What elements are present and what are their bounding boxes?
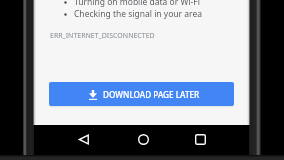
- staticText: Checking the signal in your area: [74, 8, 202, 20]
- other: Download: [89, 90, 97, 100]
- staticText: DOWNLOAD PAGE LATER: [103, 89, 200, 100]
- button[interactable]: Home: [130, 126, 156, 152]
- staticText: ERR_INTERNET_DISCONNECTED: [50, 31, 155, 41]
- button[interactable]: Download: [49, 82, 234, 106]
- staticText: Turning on mobile data or Wi-Fi: [74, 0, 200, 8]
- button[interactable]: Recent apps: [187, 126, 213, 152]
- button[interactable]: Back: [70, 126, 96, 152]
